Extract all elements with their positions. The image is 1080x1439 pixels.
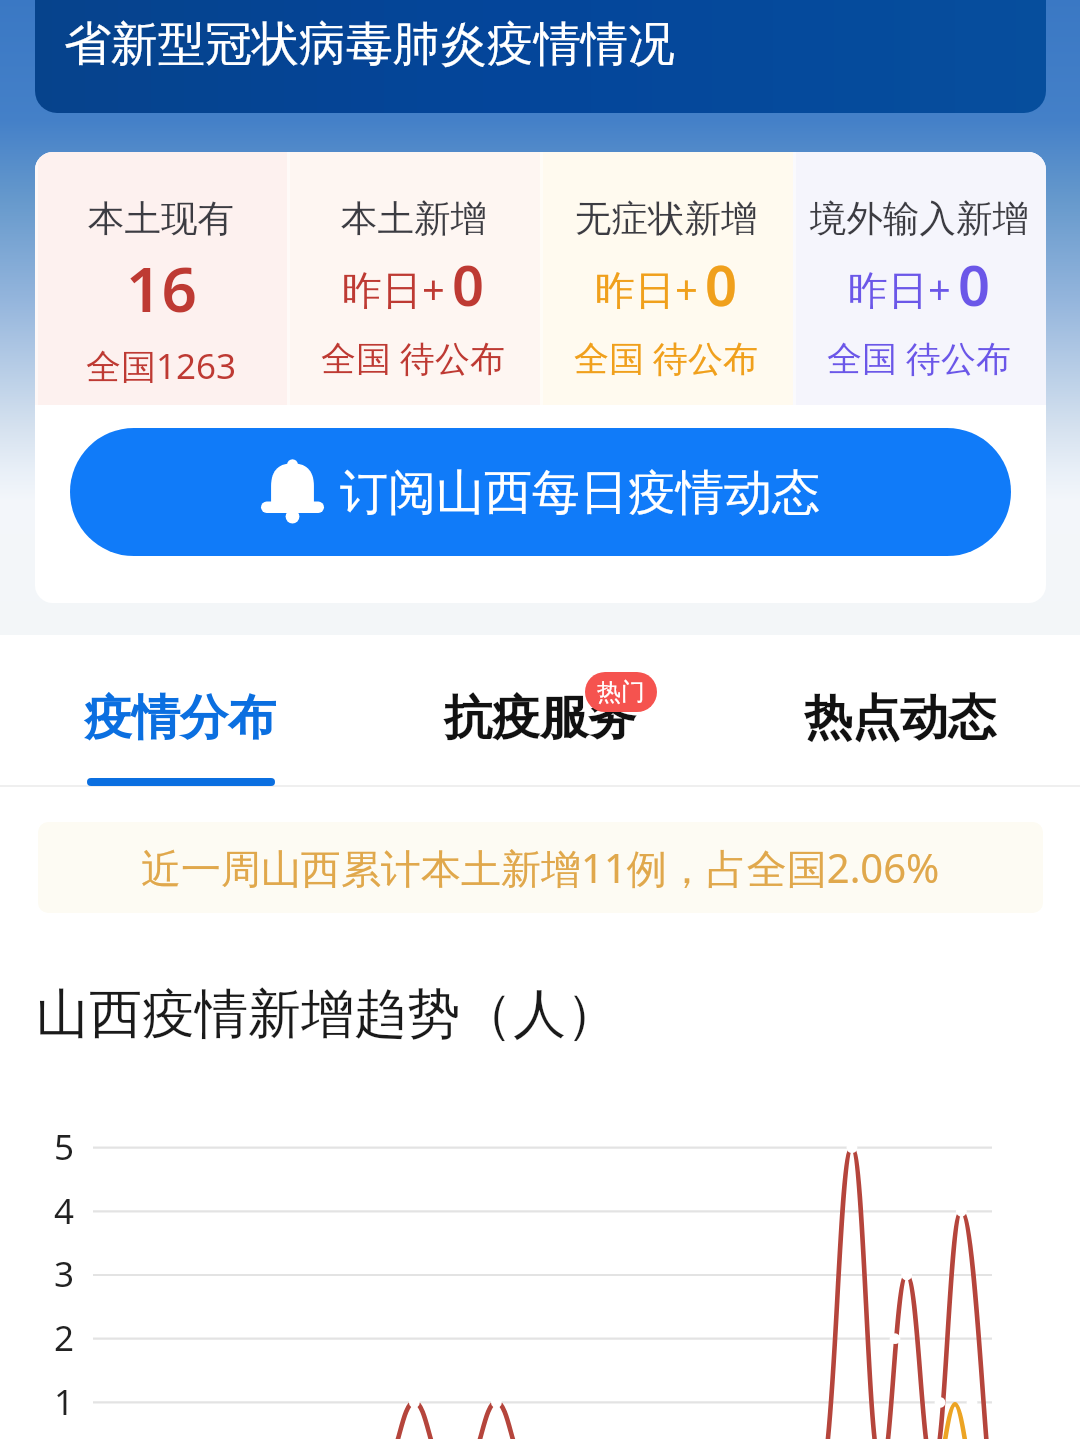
staticText: 1 (54, 1378, 75, 1426)
staticText: 0 (958, 246, 991, 322)
button[interactable]: 热点动态 (720, 635, 1080, 785)
staticText: 山西疫情新增趋势（人） (36, 981, 619, 1048)
staticText: 0 (705, 246, 738, 322)
staticText: 5 (54, 1123, 75, 1171)
staticText: 2 (54, 1314, 75, 1362)
button[interactable]: 本土现有 (35, 152, 287, 405)
staticText: 省新型冠状病毒肺炎疫情情况 (64, 15, 675, 74)
staticText: 本土新增 (341, 196, 487, 242)
staticText: 16 (126, 246, 197, 330)
staticText: 全国1263 (86, 342, 237, 390)
staticText: 无症状新增 (575, 196, 758, 242)
staticText: 3 (54, 1250, 75, 1298)
button[interactable]: 抗疫服务 (360, 635, 720, 785)
staticText: 0 (452, 246, 485, 322)
staticText: 全国 待公布 (574, 334, 759, 382)
staticText: 热点动态 (804, 688, 996, 748)
button[interactable]: 无症状新增 (540, 152, 793, 405)
staticText: 近一周山西累计本土新增11例，占全国2.06% (141, 840, 940, 895)
staticText: 昨日+ (848, 261, 951, 316)
staticText: 本土现有 (88, 196, 234, 242)
staticText: 全国 待公布 (827, 334, 1012, 382)
button[interactable]: 疫情分布 (0, 635, 360, 785)
staticText: 疫情分布 (84, 688, 276, 748)
staticText: 昨日+ (595, 261, 698, 316)
staticText: 4 (54, 1187, 75, 1235)
staticText: 订阅山西每日疫情动态 (340, 463, 820, 523)
button[interactable]: 境外输入新增 (793, 152, 1046, 405)
button[interactable]: Subscribe to daily updates (70, 428, 1011, 556)
staticText: 昨日+ (342, 261, 445, 316)
button[interactable]: 本土新增 (287, 152, 540, 405)
staticText: 境外输入新增 (810, 196, 1029, 242)
other: Subscribe to daily updates (261, 460, 324, 525)
staticText: 抗疫服务 (444, 688, 636, 748)
staticText: 热门 (597, 677, 645, 707)
staticText: 全国 待公布 (321, 334, 506, 382)
